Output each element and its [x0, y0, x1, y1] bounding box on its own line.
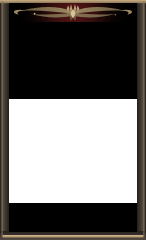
button[interactable]: Emblem banner [9, 3, 137, 22]
